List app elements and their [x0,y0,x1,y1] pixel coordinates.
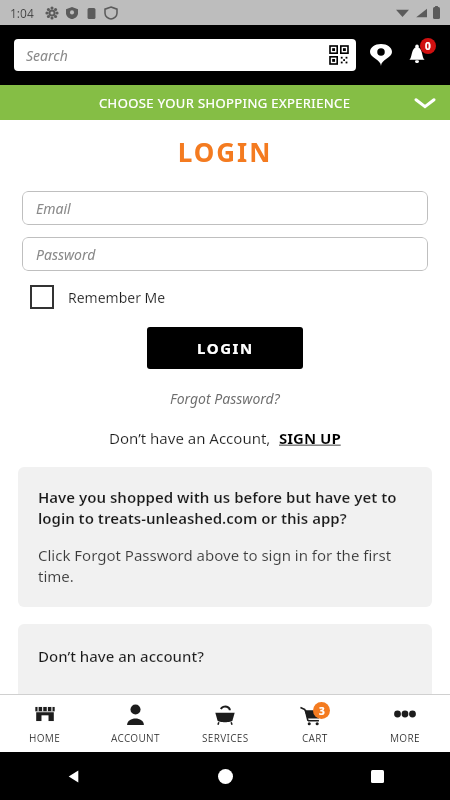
button[interactable]: MORE [360,695,450,752]
button[interactable]: Store locator [364,38,398,72]
button[interactable]: Don’t have an account? [18,624,432,748]
button[interactable]: Home [208,759,242,793]
button[interactable]: Scan QR code [328,44,350,66]
staticText: Have you shopped with us before but have… [38,487,412,529]
button[interactable]: Email [22,191,428,225]
staticText: Remember Me [68,288,166,307]
staticText: Email [36,199,71,218]
button[interactable]: SIGN UP [279,428,341,448]
button[interactable]: LOGIN [147,327,303,369]
staticText: 0 [425,39,431,53]
staticText: SERVICES [202,731,249,745]
staticText: Password [36,245,96,264]
button[interactable]: SERVICES [180,695,270,752]
button[interactable]: Recent apps [360,759,394,793]
staticText: Search [26,46,68,65]
staticText: MORE [390,731,420,745]
staticText: Don’t have an account? [38,646,204,666]
button[interactable]: HOME [0,695,90,752]
button[interactable]: Notifications [398,36,436,74]
staticText: HOME [29,731,61,745]
staticText: LOGIN [197,338,254,358]
button[interactable]: Password [22,237,428,271]
staticText: Don’t have an Account, [109,428,279,448]
staticText: 3 [319,704,325,718]
button[interactable]: CHOOSE YOUR SHOPPING EXPERIENCE [0,85,450,120]
button[interactable]: Remember Me [30,285,166,309]
staticText: CART [302,731,328,745]
button[interactable]: Search [14,39,356,71]
button[interactable]: Forgot Password? [170,389,280,408]
staticText: ACCOUNT [111,731,160,745]
button[interactable]: 3 [270,695,360,752]
staticText: CHOOSE YOUR SHOPPING EXPERIENCE [99,94,351,112]
button[interactable]: Back [56,759,90,793]
staticText: Click Forgot Password above to sign in f… [38,545,412,587]
button[interactable]: ACCOUNT [90,695,180,752]
staticText: 1:04 [10,5,34,21]
staticText: LOGIN [0,134,450,169]
